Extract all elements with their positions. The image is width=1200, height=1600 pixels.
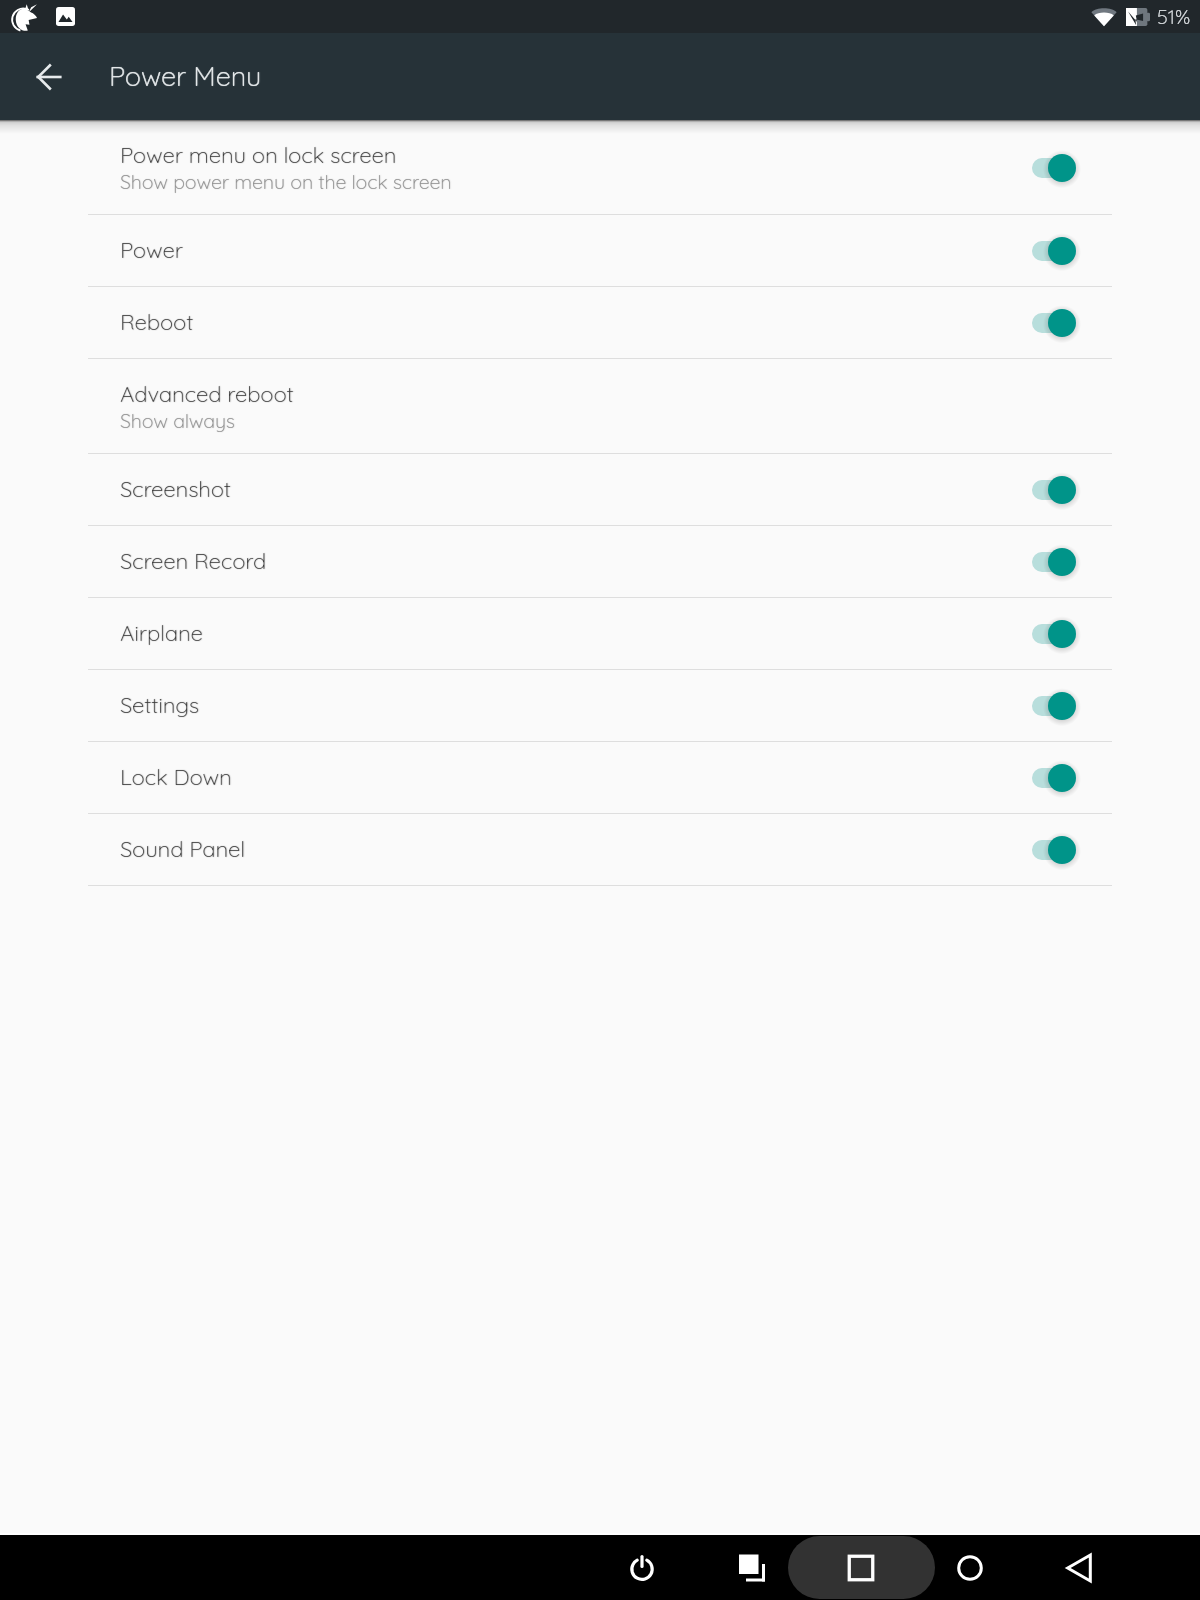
staticText: Power Menu <box>109 59 262 93</box>
button[interactable]: Back <box>1049 1538 1109 1598</box>
staticText: Screenshot <box>120 475 231 503</box>
button[interactable]: Power <box>612 1538 672 1598</box>
staticText: 51% <box>1157 4 1191 29</box>
button[interactable]: Back <box>25 53 73 101</box>
button[interactable]: Screenshot <box>0 454 1200 526</box>
button[interactable]: Lock Down <box>0 742 1200 814</box>
button[interactable]: Airplane <box>0 598 1200 670</box>
button[interactable]: Power menu on lock screen <box>0 120 1200 215</box>
staticText: Show power menu on the lock screen <box>120 169 452 193</box>
staticText: Sound Panel <box>120 835 246 863</box>
staticText: Power <box>120 236 183 264</box>
staticText: Airplane <box>120 619 203 647</box>
button[interactable]: Recents <box>831 1538 891 1598</box>
button[interactable]: Settings <box>0 670 1200 742</box>
staticText: Reboot <box>120 308 194 336</box>
staticText: Show always <box>120 408 235 432</box>
button[interactable]: Screen Record <box>0 526 1200 598</box>
staticText: Screen Record <box>120 547 267 575</box>
button[interactable]: Advanced reboot <box>0 359 1200 454</box>
button[interactable]: Sound Panel <box>0 814 1200 886</box>
staticText: Settings <box>120 691 199 719</box>
staticText: Advanced reboot <box>120 380 294 408</box>
button[interactable]: Reboot <box>0 287 1200 359</box>
button[interactable]: Power <box>0 215 1200 287</box>
staticText: Power menu on lock screen <box>120 141 397 169</box>
staticText: Lock Down <box>120 763 232 791</box>
button[interactable]: Split screen <box>722 1538 782 1598</box>
button[interactable]: Home <box>940 1538 1000 1598</box>
